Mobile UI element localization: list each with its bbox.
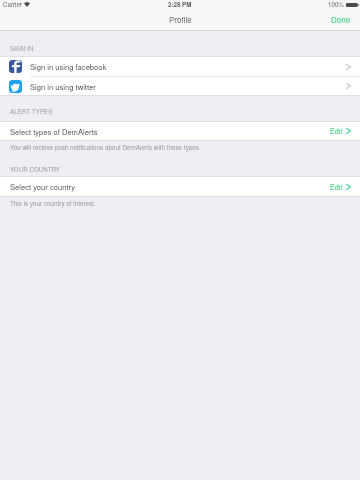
button[interactable]: Select your country: [0, 177, 360, 196]
button[interactable]: Sign in using twitter: [0, 77, 360, 95]
staticText: Done: [331, 14, 351, 25]
staticText: Select your country: [10, 181, 76, 192]
staticText: Select types of DemAlerts: [10, 126, 98, 137]
staticText: Profile: [169, 14, 192, 25]
staticText: Sign in using twitter: [30, 81, 96, 92]
staticText: You will recieve push notifications abou…: [10, 143, 201, 152]
button[interactable]: Select types of DemAlerts: [0, 122, 360, 140]
button[interactable]: Done: [322, 14, 360, 25]
staticText: SIGN IN: [10, 44, 34, 53]
staticText: Edit: [330, 126, 343, 136]
button[interactable]: Sign in using facebook: [0, 57, 360, 76]
staticText: Carrier: [3, 0, 22, 9]
staticText: This is your country of interest.: [10, 199, 96, 208]
staticText: Edit: [330, 182, 343, 192]
staticText: ALERT TYPES: [10, 107, 53, 116]
staticText: Sign in using facebook: [30, 61, 107, 72]
staticText: YOUR COUNTRY: [10, 165, 60, 174]
staticText: 100%: [328, 0, 344, 9]
staticText: 2:28 PM: [168, 0, 192, 9]
